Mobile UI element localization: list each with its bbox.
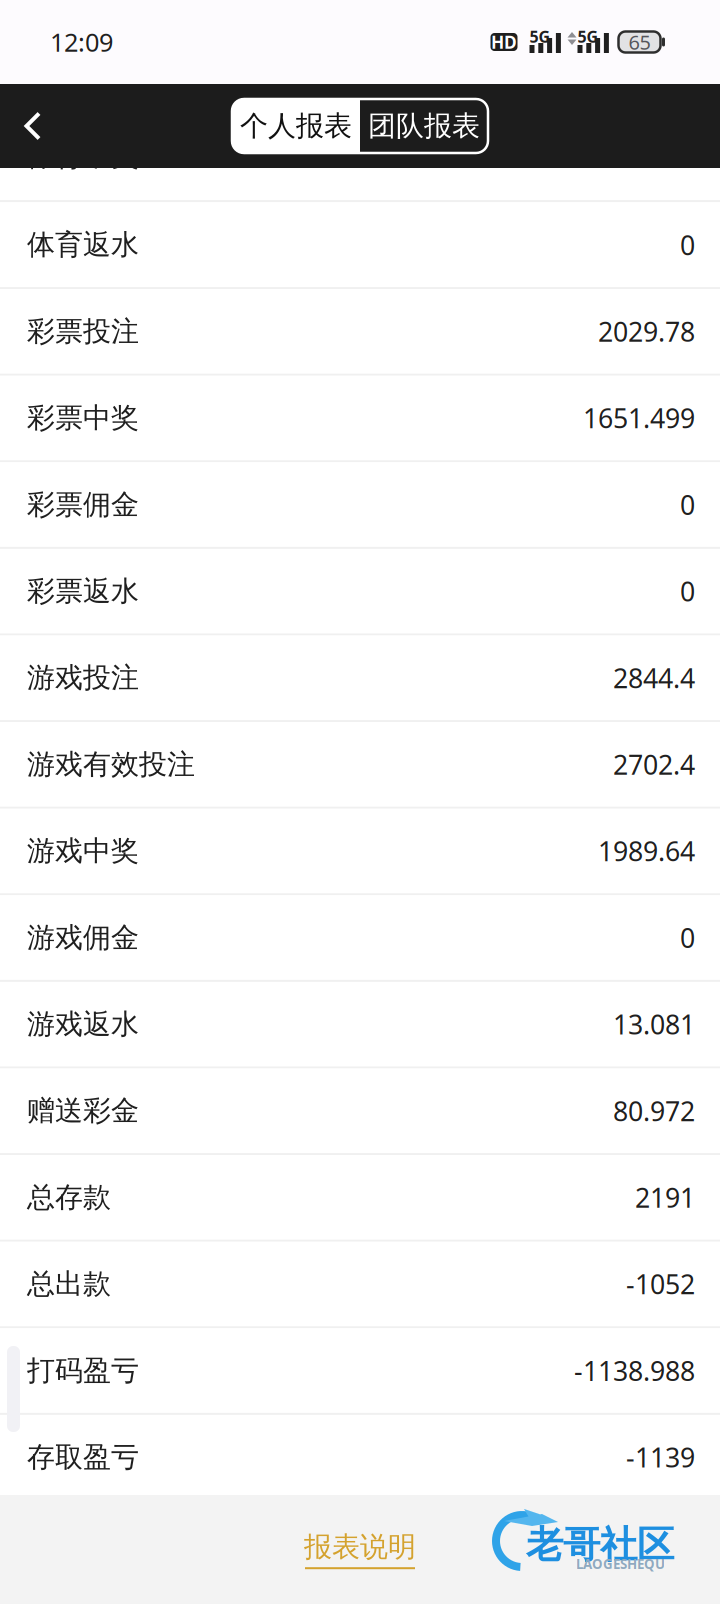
button[interactable]: 总出款 [0, 1242, 720, 1328]
staticText: 5G [529, 26, 550, 47]
button[interactable]: 游戏返水 [0, 982, 720, 1068]
staticText: HD [491, 30, 517, 53]
button[interactable]: 个人报表 [232, 99, 360, 153]
staticText: 0 [680, 138, 695, 174]
button[interactable]: 游戏中奖 [0, 809, 720, 895]
staticText: 80.972 [613, 1093, 695, 1128]
staticText: 团队报表 [368, 109, 480, 143]
button[interactable]: 彩票佣金 [0, 462, 720, 549]
staticText: -1138.988 [574, 1353, 695, 1388]
staticText: 个人报表 [240, 109, 352, 143]
button[interactable]: 赠送彩金 [0, 1068, 720, 1155]
button[interactable]: 总存款 [0, 1155, 720, 1242]
button[interactable]: Back [0, 84, 66, 168]
button[interactable]: 存取盈亏 [0, 1415, 720, 1501]
staticText: 老哥社区 [526, 1522, 674, 1568]
staticText: 体育中奖 [27, 139, 139, 173]
staticText: 0 [680, 920, 695, 955]
staticText: 报表说明 [304, 1530, 416, 1564]
staticText: 游戏有效投注 [27, 747, 195, 782]
staticText: 0 [680, 487, 695, 522]
button[interactable]: 彩票返水 [0, 549, 720, 635]
button[interactable]: 团队报表 [360, 99, 488, 153]
staticText: 13.081 [613, 1006, 695, 1042]
staticText: 总存款 [27, 1180, 111, 1215]
staticText: 2702.4 [613, 747, 695, 782]
button[interactable]: 彩票中奖 [0, 376, 720, 462]
staticText: 打码盈亏 [27, 1353, 139, 1388]
staticText: 体育返水 [27, 228, 139, 262]
staticText: 彩票中奖 [27, 401, 139, 435]
button[interactable]: 游戏佣金 [0, 895, 720, 982]
staticText: 2029.78 [598, 314, 695, 349]
staticText: 1651.499 [583, 400, 695, 436]
staticText: 游戏佣金 [27, 920, 139, 955]
staticText: -1052 [626, 1266, 695, 1302]
staticText: -1139 [626, 1439, 695, 1475]
button[interactable]: 打码盈亏 [0, 1328, 720, 1415]
button[interactable]: 体育返水 [0, 202, 720, 289]
staticText: 0 [680, 227, 695, 262]
staticText: 5G [577, 26, 598, 47]
staticText: LAOGESHEQU [576, 1555, 665, 1573]
staticText: 彩票投注 [27, 314, 139, 349]
staticText: 2191 [635, 1180, 695, 1215]
button[interactable]: 游戏有效投注 [0, 722, 720, 809]
staticText: 总出款 [27, 1267, 111, 1301]
staticText: 存取盈亏 [27, 1440, 139, 1474]
staticText: 游戏中奖 [27, 834, 139, 868]
staticText: 12:09 [50, 25, 113, 59]
staticText: 彩票佣金 [27, 487, 139, 522]
staticText: 2844.4 [613, 660, 695, 695]
button[interactable]: 游戏投注 [0, 635, 720, 722]
staticText: 游戏返水 [27, 1007, 139, 1041]
staticText: 赠送彩金 [27, 1094, 139, 1128]
staticText: 彩票返水 [27, 574, 139, 608]
button[interactable]: 报表说明 [294, 1522, 426, 1577]
staticText: 1989.64 [598, 833, 695, 869]
staticText: 0 [680, 573, 695, 609]
button[interactable]: 彩票投注 [0, 289, 720, 376]
staticText: 65 [628, 29, 650, 55]
staticText: 游戏投注 [27, 661, 139, 695]
